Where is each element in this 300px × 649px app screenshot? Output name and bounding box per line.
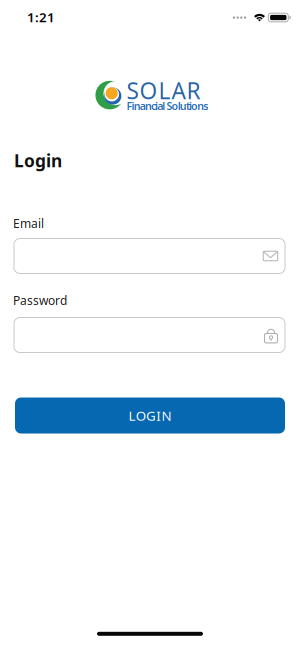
button[interactable]: LOGIN — [15, 397, 285, 433]
staticText: Login — [14, 149, 62, 172]
staticText: 1:21 — [27, 8, 55, 26]
button[interactable] — [14, 238, 285, 273]
button[interactable] — [14, 317, 285, 352]
staticText: Email — [13, 215, 44, 231]
staticText: Password — [13, 292, 67, 308]
staticText: Financial Solutions — [126, 99, 208, 113]
staticText: LOGIN — [128, 407, 172, 424]
staticText: SOLAR — [126, 75, 200, 105]
